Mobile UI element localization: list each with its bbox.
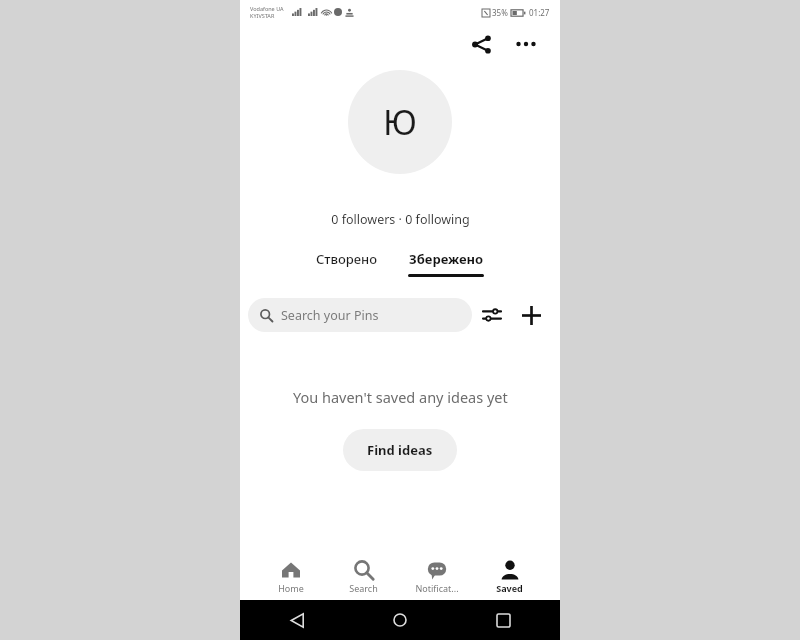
button[interactable]: Recent apps bbox=[486, 603, 520, 637]
button[interactable]: Saved bbox=[473, 552, 546, 600]
staticText: Search your Pins bbox=[281, 307, 379, 324]
button[interactable]: Search your Pins bbox=[248, 298, 472, 332]
button[interactable]: Back bbox=[280, 603, 314, 637]
staticText: 0 followers · 0 following bbox=[331, 211, 470, 228]
button[interactable]: Home bbox=[254, 552, 327, 600]
button[interactable]: Share bbox=[461, 24, 501, 64]
button[interactable]: Find ideas bbox=[343, 429, 457, 471]
button[interactable]: Створено bbox=[306, 248, 388, 279]
button[interactable]: Filter bbox=[472, 295, 512, 335]
staticText: Search bbox=[349, 582, 378, 594]
staticText: Створено bbox=[316, 250, 378, 268]
button[interactable]: Search bbox=[327, 552, 400, 600]
button[interactable]: Збережено bbox=[398, 248, 494, 279]
staticText: Saved bbox=[496, 582, 523, 594]
button[interactable]: Notificat... bbox=[400, 552, 473, 600]
staticText: You haven't saved any ideas yet bbox=[293, 387, 508, 407]
staticText: KYIVSTAR bbox=[250, 12, 275, 19]
button[interactable]: Ю bbox=[348, 70, 452, 174]
staticText: Vodafone UA bbox=[250, 5, 284, 12]
button[interactable]: Create bbox=[512, 296, 550, 334]
staticText: Notificat... bbox=[415, 582, 459, 594]
button[interactable]: More options bbox=[506, 24, 546, 64]
staticText: Ю bbox=[383, 99, 417, 145]
staticText: 35% bbox=[492, 7, 508, 18]
staticText: Home bbox=[278, 582, 304, 594]
staticText: Find ideas bbox=[367, 441, 433, 459]
button[interactable]: Home bbox=[383, 603, 417, 637]
staticText: Збережено bbox=[409, 250, 484, 268]
staticText: 01:27 bbox=[529, 7, 550, 18]
